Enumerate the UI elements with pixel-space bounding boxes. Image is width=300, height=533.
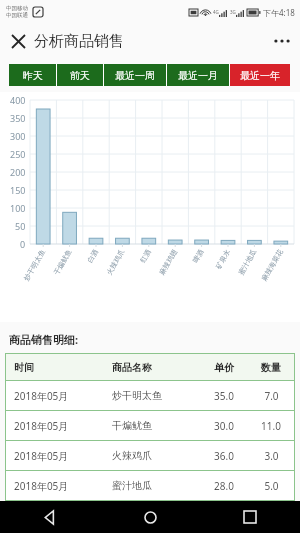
button[interactable]: 2018年05月 <box>5 441 295 470</box>
staticText: 28.0 <box>214 479 234 493</box>
button[interactable]: 2018年05月 <box>5 471 295 500</box>
staticText: 中国联通 <box>6 12 28 19</box>
staticText: 时间 <box>14 361 34 374</box>
staticText: 炒干明太鱼 <box>112 389 162 402</box>
staticText: 中国移动 <box>6 5 28 12</box>
staticText: 最近一周 <box>115 69 155 82</box>
staticText: 36.0 <box>214 449 234 463</box>
staticText: 2018年05月 <box>14 389 69 403</box>
staticText: 蜜汁地瓜 <box>112 479 152 492</box>
staticText: 最近一年 <box>240 69 280 82</box>
button[interactable]: Recent apps <box>200 501 300 533</box>
staticText: 商品名称 <box>112 361 152 374</box>
button[interactable]: 2018年05月 <box>5 411 295 440</box>
staticText: 3G <box>230 9 236 15</box>
button[interactable]: 最近一月 <box>167 64 229 86</box>
staticText: 前天 <box>70 69 90 82</box>
button[interactable]: Back <box>0 501 100 533</box>
button[interactable]: 前天 <box>57 64 103 86</box>
button[interactable]: Close <box>4 27 32 55</box>
button[interactable]: 最近一年 <box>230 64 290 86</box>
staticText: 干煸鱿鱼 <box>112 419 152 432</box>
staticText: 火辣鸡爪 <box>112 449 152 462</box>
button[interactable]: 最近一周 <box>104 64 166 86</box>
staticText: 2018年05月 <box>14 449 69 463</box>
staticText: 30.0 <box>214 419 234 433</box>
staticText: 数量 <box>261 361 281 374</box>
staticText: 35.0 <box>214 389 234 403</box>
button[interactable]: More options <box>268 27 296 55</box>
staticText: 下午4:18 <box>263 7 295 18</box>
staticText: 2018年05月 <box>14 419 69 433</box>
staticText: 5.0 <box>264 479 279 493</box>
staticText: 分析商品销售 <box>34 32 124 51</box>
staticText: 7.0 <box>264 389 279 403</box>
staticText: 2018年05月 <box>14 479 69 493</box>
staticText: 最近一月 <box>178 69 218 82</box>
staticText: 11.0 <box>261 419 281 433</box>
staticText: 3.0 <box>264 449 279 463</box>
button[interactable]: 2018年05月 <box>5 381 295 410</box>
staticText: 单价 <box>214 361 234 374</box>
staticText: 4G <box>213 9 219 15</box>
button[interactable]: Home <box>100 501 200 533</box>
button[interactable]: 昨天 <box>9 64 56 86</box>
staticText: 昨天 <box>23 69 43 82</box>
staticText: 商品销售明细: <box>9 332 79 347</box>
